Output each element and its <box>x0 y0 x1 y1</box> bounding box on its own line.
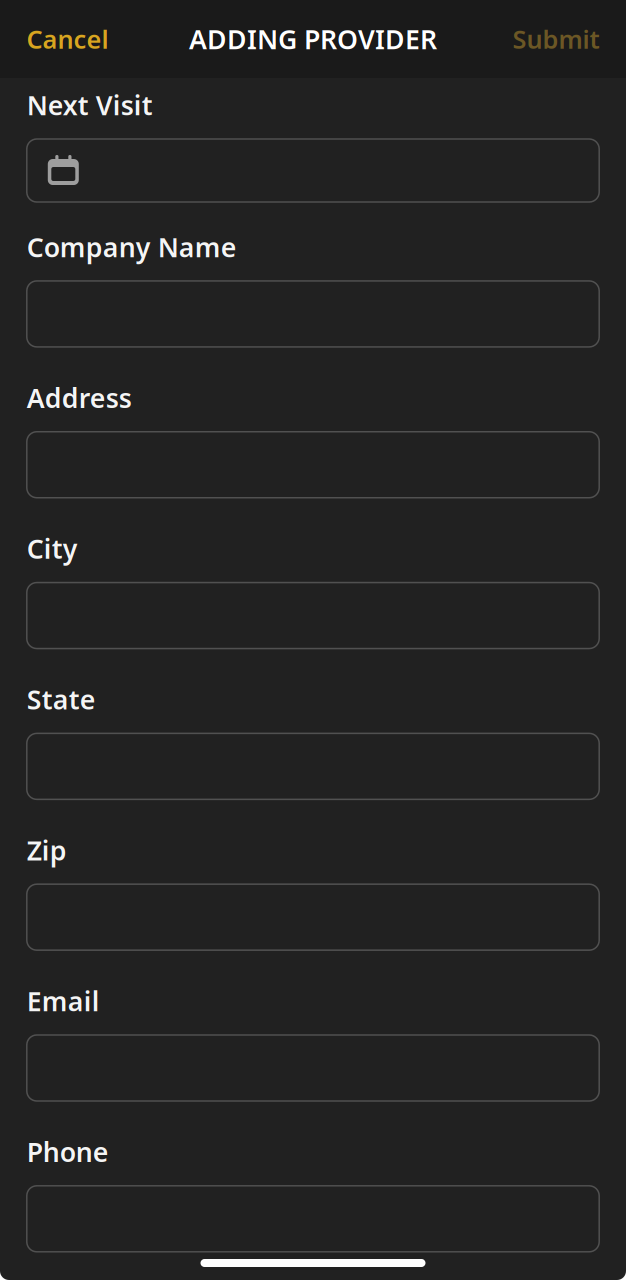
staticText: Zip <box>27 832 67 868</box>
button[interactable] <box>27 884 599 950</box>
button[interactable] <box>27 1186 599 1252</box>
button[interactable]: Cancel <box>27 22 109 56</box>
button[interactable] <box>27 281 599 347</box>
button[interactable] <box>27 139 599 202</box>
staticText: Email <box>27 983 100 1019</box>
button[interactable] <box>27 733 599 799</box>
button[interactable] <box>27 583 599 649</box>
staticText: City <box>27 531 78 566</box>
staticText: ADDING PROVIDER <box>189 21 437 57</box>
staticText: Submit <box>512 22 599 56</box>
button[interactable] <box>27 432 599 498</box>
staticText: Phone <box>27 1134 109 1169</box>
staticText: Address <box>27 380 132 415</box>
staticText: State <box>27 682 96 717</box>
staticText: Cancel <box>27 22 109 56</box>
staticText: Next Visit <box>27 87 153 123</box>
button[interactable] <box>27 1035 599 1101</box>
button[interactable]: Submit <box>512 22 599 56</box>
staticText: Company Name <box>27 229 237 264</box>
